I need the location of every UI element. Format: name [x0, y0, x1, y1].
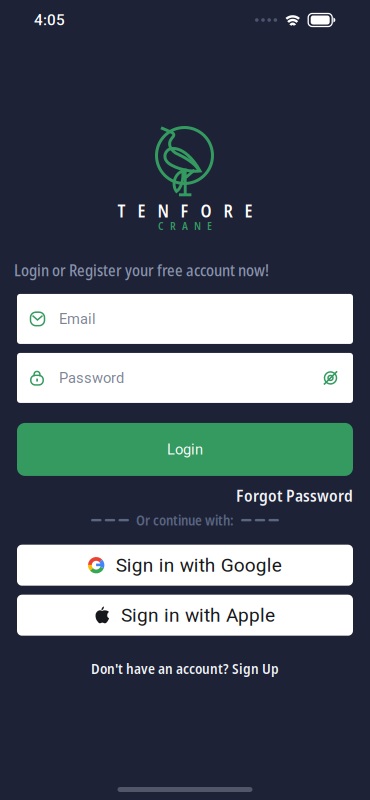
- button[interactable]: Login: [17, 423, 353, 476]
- staticText: Forgot Password: [236, 484, 353, 507]
- button[interactable]: Forgot Password: [236, 484, 353, 507]
- staticText: Login or Register your free account now!: [14, 259, 269, 281]
- staticText: Don't have an account? Sign Up: [91, 659, 279, 678]
- staticText: T E N F O R E: [117, 199, 252, 223]
- staticText: Login: [167, 441, 203, 458]
- staticText: Email: [59, 310, 96, 327]
- staticText: Password: [59, 369, 124, 386]
- button[interactable]: Don't have an account? Sign Up: [91, 659, 279, 678]
- staticText: Or continue with:: [136, 511, 234, 530]
- staticText: 4:05: [34, 11, 65, 29]
- button[interactable]: Sign in with Apple: [17, 595, 353, 636]
- button[interactable]: Sign in with Google: [17, 545, 353, 586]
- staticText: Sign in with Apple: [121, 604, 275, 626]
- staticText: C R A N E: [158, 219, 212, 233]
- staticText: Sign in with Google: [116, 554, 282, 576]
